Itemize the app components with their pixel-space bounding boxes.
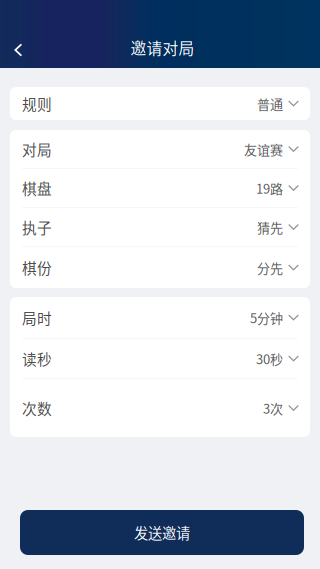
staticText: 棋份 [22, 257, 52, 278]
staticText: 次数 [22, 397, 52, 419]
staticText: 友谊赛 [244, 139, 283, 158]
button[interactable]: 棋盘 [10, 169, 310, 207]
button[interactable]: 规则 [10, 87, 310, 120]
button[interactable]: 执子 [10, 208, 310, 246]
staticText: 局时 [22, 307, 52, 328]
button[interactable]: Back [0, 0, 40, 68]
staticText: 执子 [22, 216, 52, 238]
staticText: 发送邀请 [134, 522, 190, 543]
staticText: 30秒 [256, 349, 283, 368]
button[interactable]: 对局 [10, 130, 310, 168]
staticText: 规则 [22, 93, 52, 114]
button[interactable]: 发送邀请 [20, 510, 304, 555]
staticText: 读秒 [22, 348, 52, 369]
staticText: 邀请对局 [130, 36, 194, 59]
button[interactable]: 棋份 [10, 247, 310, 288]
staticText: 3次 [263, 398, 283, 417]
button[interactable]: 次数 [10, 379, 310, 437]
button[interactable]: 局时 [10, 297, 310, 338]
staticText: 猜先 [257, 217, 283, 236]
button[interactable]: 读秒 [10, 339, 310, 378]
staticText: 5分钟 [250, 308, 283, 327]
staticText: 19路 [256, 178, 283, 197]
staticText: 对局 [22, 138, 52, 160]
staticText: 分先 [257, 258, 283, 277]
staticText: 棋盘 [22, 177, 52, 199]
staticText: 普通 [257, 94, 283, 113]
